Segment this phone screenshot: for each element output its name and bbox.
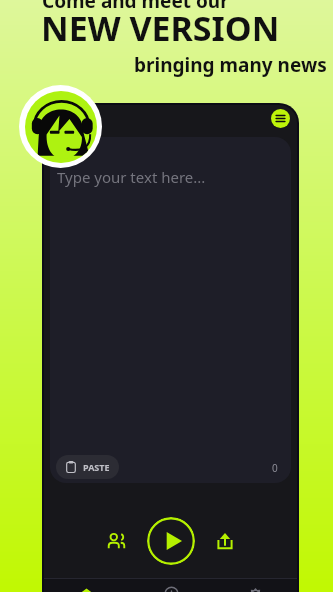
staticText: bringing many news — [134, 52, 327, 78]
staticText: 0 — [272, 461, 278, 475]
button[interactable]: History — [129, 579, 213, 592]
button[interactable]: Menu — [271, 109, 290, 128]
staticText: PASTE — [83, 461, 110, 473]
button[interactable]: Settings — [213, 579, 297, 592]
staticText: NEW VERSION — [41, 5, 280, 51]
button[interactable]: Share — [206, 522, 244, 560]
button[interactable]: Voices — [97, 522, 135, 560]
staticText: Type your text here... — [57, 167, 206, 187]
button[interactable]: Home — [44, 579, 129, 592]
button[interactable]: Play — [147, 517, 195, 565]
staticText: Come and meet our — [42, 0, 229, 14]
button[interactable]: Assistant avatar — [19, 85, 102, 168]
button[interactable]: PASTE — [56, 455, 119, 479]
